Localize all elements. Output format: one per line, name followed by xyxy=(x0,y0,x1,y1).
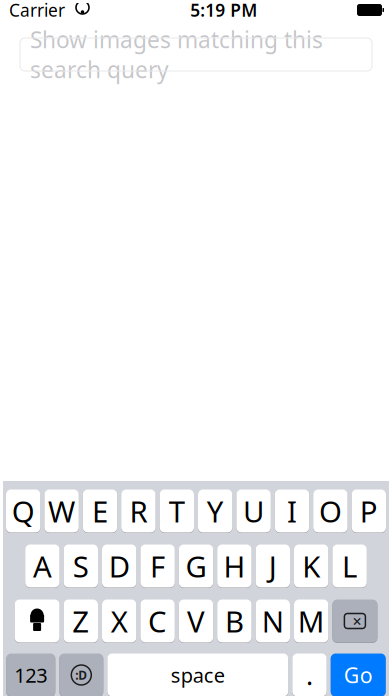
staticText: C xyxy=(148,601,167,640)
staticText: N xyxy=(262,601,284,640)
button[interactable]: L xyxy=(332,544,367,588)
button[interactable]: M xyxy=(294,599,328,643)
button[interactable]: Show images matching this search query xyxy=(20,38,372,71)
button[interactable]: S xyxy=(64,544,98,588)
button[interactable]: N xyxy=(256,599,290,643)
staticText: V xyxy=(187,601,205,640)
staticText: × xyxy=(352,610,361,632)
staticText: O xyxy=(319,491,342,530)
button[interactable]: C xyxy=(140,599,175,643)
staticText: U xyxy=(243,491,264,530)
staticText: :D xyxy=(75,667,87,683)
button[interactable]: P xyxy=(352,489,386,533)
staticText: Y xyxy=(207,491,224,530)
button[interactable]: U xyxy=(236,489,271,533)
button[interactable]: T xyxy=(160,489,194,533)
staticText: S xyxy=(73,546,89,585)
staticText: W xyxy=(48,491,75,530)
staticText: G xyxy=(185,546,206,585)
staticText: space xyxy=(171,662,225,688)
staticText: R xyxy=(129,491,147,530)
button[interactable]: V xyxy=(179,599,213,643)
button[interactable]: Go xyxy=(331,653,386,696)
staticText: T xyxy=(169,491,185,530)
button[interactable]: E xyxy=(83,489,117,533)
staticText: K xyxy=(302,546,320,585)
staticText: H xyxy=(223,546,245,585)
button[interactable]: W xyxy=(44,489,79,533)
button[interactable]: A xyxy=(25,544,60,588)
button[interactable]: O xyxy=(313,489,348,533)
staticText: D xyxy=(109,546,130,585)
staticText: . xyxy=(306,657,313,693)
button[interactable]: Shift xyxy=(15,599,60,643)
staticText: Go xyxy=(344,661,373,689)
button[interactable]: space xyxy=(107,653,288,696)
button[interactable]: . xyxy=(292,653,327,696)
staticText: X xyxy=(111,601,128,640)
staticText: L xyxy=(342,546,357,585)
staticText: M xyxy=(298,601,325,640)
staticText: P xyxy=(360,491,378,530)
staticText: Z xyxy=(72,601,89,640)
staticText: 123 xyxy=(14,662,47,688)
staticText: B xyxy=(225,601,244,640)
button[interactable]: J xyxy=(256,544,290,588)
button[interactable]: Q xyxy=(6,489,40,533)
staticText: F xyxy=(150,546,165,585)
staticText: 5:19 PM xyxy=(190,0,257,21)
button[interactable]: R xyxy=(121,489,156,533)
button[interactable]: Y xyxy=(198,489,232,533)
staticText: Q xyxy=(12,491,35,530)
staticText: Carrier xyxy=(9,0,65,21)
button[interactable]: Z xyxy=(64,599,98,643)
staticText: A xyxy=(33,546,52,585)
button[interactable]: H xyxy=(217,544,252,588)
button[interactable]: Delete xyxy=(332,599,377,643)
staticText: E xyxy=(92,491,108,530)
button[interactable]: I xyxy=(275,489,309,533)
button[interactable]: Emoji keyboard xyxy=(59,653,103,696)
button[interactable]: 123 xyxy=(6,653,55,696)
button[interactable]: K xyxy=(294,544,328,588)
button[interactable]: B xyxy=(217,599,252,643)
button[interactable]: F xyxy=(140,544,175,588)
staticText: I xyxy=(287,491,297,530)
staticText: Show images matching this search query xyxy=(30,24,323,85)
button[interactable]: G xyxy=(179,544,213,588)
staticText: J xyxy=(269,546,277,585)
button[interactable]: D xyxy=(102,544,136,588)
button[interactable]: X xyxy=(102,599,136,643)
